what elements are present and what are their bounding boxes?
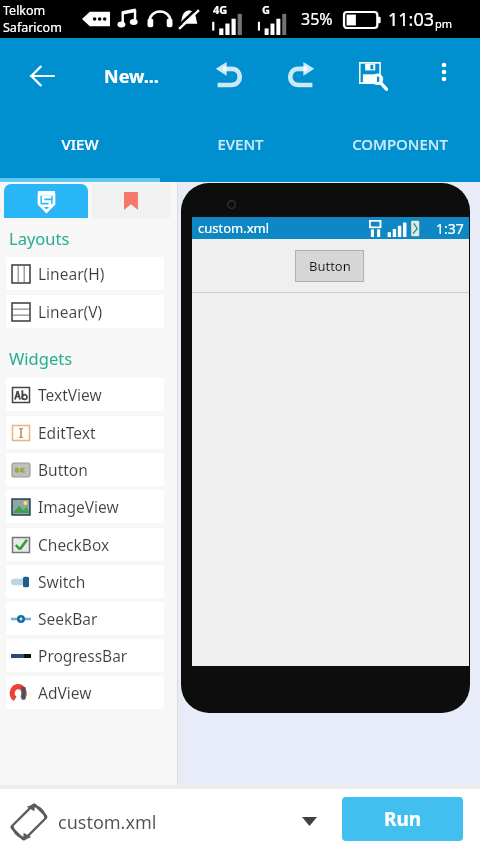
button[interactable]: Redo — [280, 55, 322, 97]
button[interactable]: VIEW — [0, 112, 160, 182]
staticText: TextView — [38, 384, 102, 405]
staticText: 35% — [301, 8, 333, 30]
staticText: Telkom — [3, 2, 46, 19]
button[interactable]: Switch — [6, 565, 164, 598]
staticText: 11:03 — [388, 7, 435, 32]
button[interactable]: Run — [342, 797, 463, 841]
button[interactable]: More options — [426, 54, 462, 90]
staticText: SeekBar — [38, 608, 98, 629]
staticText: pm — [435, 16, 453, 31]
staticText: 4G — [213, 2, 228, 17]
button[interactable]: Choose file — [290, 802, 328, 840]
button[interactable]: COMPONENT — [320, 112, 480, 182]
button[interactable]: Saved components — [92, 184, 170, 218]
button[interactable]: SeekBar — [6, 602, 164, 635]
button[interactable]: Save — [352, 55, 394, 97]
staticText: New... — [104, 64, 159, 89]
staticText: Linear(H) — [38, 263, 105, 284]
staticText: ProgressBar — [38, 645, 128, 666]
button[interactable]: AdView — [6, 676, 164, 709]
staticText: AdView — [38, 682, 92, 703]
button[interactable]: Widgets palette — [4, 184, 88, 218]
staticText: custom.xml — [198, 219, 270, 237]
staticText: Button — [38, 459, 88, 480]
staticText: COMPONENT — [352, 134, 448, 154]
button[interactable]: Back — [22, 56, 62, 96]
staticText: Switch — [38, 571, 86, 592]
staticText: Safaricom — [3, 19, 62, 36]
staticText: 1:37 — [436, 219, 464, 238]
button[interactable]: EVENT — [160, 112, 320, 182]
button[interactable]: Linear(H) — [6, 257, 164, 290]
staticText: ImageView — [38, 496, 119, 517]
staticText: custom.xml — [58, 810, 157, 835]
staticText: EditText — [38, 422, 96, 443]
button[interactable]: Button — [295, 250, 364, 282]
button[interactable]: Button — [6, 453, 164, 486]
staticText: VIEW — [61, 134, 99, 154]
staticText: EVENT — [217, 134, 264, 154]
button[interactable]: CheckBox — [6, 528, 164, 561]
staticText: G — [262, 2, 270, 17]
staticText: CheckBox — [38, 534, 110, 555]
button[interactable]: Toggle orientation — [5, 798, 53, 846]
staticText: Widgets — [9, 347, 73, 369]
staticText: Layouts — [9, 227, 70, 249]
staticText: Linear(V) — [38, 301, 103, 322]
button[interactable]: TextView — [6, 378, 164, 411]
staticText: Button — [309, 257, 351, 275]
button[interactable]: ProgressBar — [6, 639, 164, 672]
button[interactable]: Linear(V) — [6, 295, 164, 328]
button[interactable]: ImageView — [6, 490, 164, 523]
button[interactable]: Undo — [208, 55, 250, 97]
staticText: Run — [384, 806, 422, 832]
button[interactable]: EditText — [6, 416, 164, 449]
